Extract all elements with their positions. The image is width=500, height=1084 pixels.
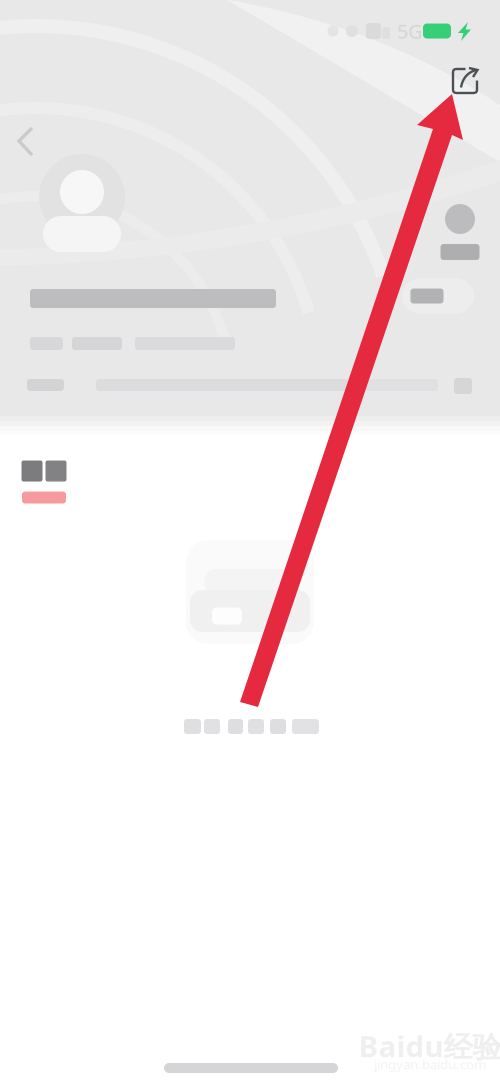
button[interactable]: Share [438,55,492,107]
staticText: Baidu经验 [358,1026,500,1065]
button[interactable]: Follow [402,278,474,313]
staticText: 5G [397,18,423,44]
button[interactable]: More [424,201,496,263]
staticText: jingyan.baidu.com [374,1055,486,1073]
button[interactable] [1,444,87,520]
button[interactable]: Back [0,0,500,1084]
